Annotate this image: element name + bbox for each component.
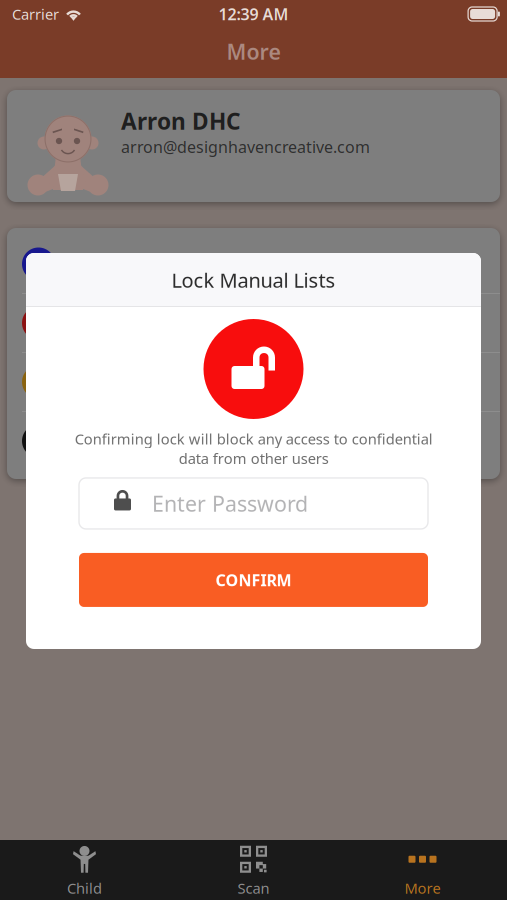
staticText: More: [226, 37, 280, 66]
staticText: Scan: [237, 878, 269, 898]
staticText: arron@designhavencreative.com: [121, 136, 370, 157]
button[interactable]: Notifications: [7, 353, 500, 412]
button[interactable]: Lock Manual Lists: [7, 294, 500, 353]
button[interactable]: More: [338, 840, 507, 900]
staticText: 12:39 AM: [218, 3, 288, 25]
staticText: Child: [67, 878, 102, 898]
button[interactable]: CONFIRM: [79, 553, 428, 607]
staticText: Enter Password: [152, 489, 308, 518]
button[interactable]: Manual Lists: [7, 235, 500, 294]
staticText: Carrier: [12, 4, 59, 24]
staticText: Arron DHC: [121, 106, 241, 136]
staticText: CONFIRM: [215, 569, 291, 590]
staticText: Lock Manual Lists: [69, 310, 233, 336]
button[interactable]: Child: [0, 840, 169, 900]
staticText: More: [404, 878, 440, 898]
staticText: Lock Manual Lists: [171, 267, 335, 293]
staticText: Confirming lock will block any access to…: [74, 429, 432, 468]
button[interactable]: About: [7, 412, 500, 470]
staticText: About: [69, 428, 125, 454]
button[interactable]: Scan: [169, 840, 338, 900]
staticText: Manual Lists: [69, 251, 185, 277]
